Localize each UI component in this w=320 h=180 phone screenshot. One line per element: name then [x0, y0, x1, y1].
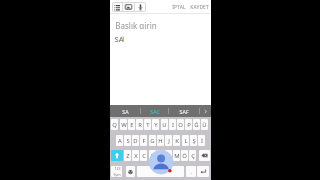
- button[interactable]: P: [185, 119, 192, 130]
- button[interactable]: Space: [137, 166, 184, 177]
- staticText: P: [187, 121, 191, 129]
- button[interactable]: M: [173, 150, 180, 161]
- button[interactable]: J: [165, 135, 172, 146]
- button[interactable]: Q: [111, 119, 118, 130]
- button[interactable]: L: [182, 135, 189, 146]
- button[interactable]: Z: [124, 150, 131, 161]
- button[interactable]: Ş: [190, 135, 197, 146]
- button[interactable]: .: [186, 166, 196, 177]
- staticText: W: [121, 121, 127, 129]
- button[interactable]: G: [149, 135, 156, 146]
- button[interactable]: R: [136, 119, 143, 130]
- button[interactable]: B: [157, 150, 164, 161]
- staticText: N: [166, 152, 171, 160]
- staticText: Q: [112, 121, 117, 129]
- button[interactable]: Add image: [123, 2, 134, 12]
- staticText: SAF: [179, 108, 189, 115]
- staticText: H: [158, 137, 163, 145]
- staticText: A: [118, 137, 122, 145]
- button[interactable]: U: [161, 119, 168, 130]
- button[interactable]: I: [169, 119, 176, 130]
- button[interactable]: İPTAL: [169, 2, 188, 12]
- button[interactable]: Ğ: [193, 119, 200, 130]
- staticText: B: [159, 152, 163, 160]
- staticText: D: [133, 137, 138, 145]
- button[interactable]: N: [165, 150, 172, 161]
- button[interactable]: Ö: [181, 150, 188, 161]
- staticText: SAC: [150, 108, 160, 115]
- button[interactable]: Ü: [201, 119, 208, 130]
- staticText: S: [126, 137, 130, 145]
- staticText: G: [150, 137, 155, 145]
- button[interactable]: D: [132, 135, 139, 146]
- staticText: Ş: [192, 137, 196, 145]
- button[interactable]: Backspace: [199, 150, 210, 161]
- button[interactable]: T: [144, 119, 151, 130]
- staticText: M: [174, 152, 180, 160]
- button[interactable]: H: [157, 135, 164, 146]
- staticText: K: [175, 137, 179, 145]
- staticText: SA: [114, 34, 124, 43]
- button[interactable]: V: [149, 150, 156, 161]
- staticText: Ö: [182, 152, 187, 160]
- staticText: Ü: [202, 121, 207, 129]
- staticText: X: [134, 152, 138, 160]
- staticText: F: [142, 137, 146, 145]
- button[interactable]: K: [173, 135, 180, 146]
- staticText: SA: [122, 108, 129, 115]
- staticText: İ: [201, 137, 203, 145]
- button[interactable]: Emoji: [126, 166, 135, 177]
- staticText: I: [172, 121, 174, 129]
- button[interactable]: SAF: [169, 105, 199, 118]
- staticText: C: [142, 152, 146, 160]
- staticText: İPTAL: [172, 4, 186, 11]
- staticText: Ğ: [194, 121, 199, 129]
- button[interactable]: Enter: [197, 166, 209, 177]
- button[interactable]: Voice note: [135, 2, 146, 12]
- staticText: J: [168, 137, 170, 145]
- button[interactable]: F: [140, 135, 147, 146]
- button[interactable]: E: [128, 119, 135, 130]
- staticText: R: [138, 121, 142, 129]
- staticText: Z: [126, 152, 130, 160]
- button[interactable]: Checklist: [112, 2, 122, 12]
- staticText: Başlık girin: [115, 20, 157, 29]
- staticText: Sym: [113, 172, 121, 177]
- button[interactable]: Symbols: [111, 166, 122, 177]
- button[interactable]: İ: [198, 135, 205, 146]
- staticText: O: [178, 121, 183, 129]
- button[interactable]: O: [177, 119, 184, 130]
- staticText: V: [151, 152, 155, 160]
- staticText: 123: [114, 166, 121, 171]
- button[interactable]: S: [124, 135, 131, 146]
- staticText: L: [184, 137, 188, 145]
- button[interactable]: Shift: [111, 150, 123, 161]
- button[interactable]: KAYDET: [188, 2, 210, 12]
- button[interactable]: SA: [110, 105, 140, 118]
- button[interactable]: SAC: [140, 105, 169, 118]
- button[interactable]: Y: [152, 119, 159, 130]
- button[interactable]: Ç: [189, 150, 196, 161]
- button[interactable]: More suggestions: [199, 105, 211, 118]
- button[interactable]: W: [120, 119, 127, 130]
- button[interactable]: X: [132, 150, 139, 161]
- button[interactable]: C: [140, 150, 147, 161]
- staticText: U: [162, 121, 167, 129]
- staticText: Y: [154, 121, 158, 129]
- staticText: E: [130, 121, 134, 129]
- staticText: .: [190, 169, 192, 175]
- staticText: T: [146, 121, 150, 129]
- staticText: Ç: [191, 152, 195, 160]
- button[interactable]: A: [116, 135, 123, 146]
- staticText: KAYDET: [190, 4, 209, 11]
